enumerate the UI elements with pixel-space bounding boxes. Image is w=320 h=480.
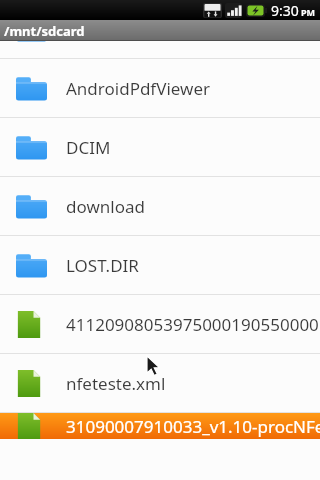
staticText: nfeteste.xml: [66, 372, 166, 395]
staticText: 41120908053975000190550000: [66, 313, 319, 336]
button[interactable]: Android: [0, 41, 320, 59]
staticText: DCIM: [66, 136, 111, 159]
staticText: PM: [301, 6, 316, 18]
staticText: download: [66, 195, 145, 218]
button[interactable]: AndroidPdfViewer: [0, 59, 320, 118]
staticText: 9:30: [271, 1, 299, 20]
staticText: 31090007910033_v1.10-procNFe.xml: [66, 415, 320, 438]
staticText: LOST.DIR: [66, 254, 139, 277]
button[interactable]: LOST.DIR: [0, 236, 320, 295]
other: Pointer: [0, 0, 320, 480]
button[interactable]: nfeteste.xml: [0, 354, 320, 413]
button[interactable]: DCIM: [0, 118, 320, 177]
button[interactable]: download: [0, 177, 320, 236]
staticText: /mnt/sdcard: [4, 22, 85, 40]
button[interactable]: 31090007910033_v1.10-procNFe.xml: [0, 413, 320, 439]
button[interactable]: 41120908053975000190550000: [0, 295, 320, 354]
staticText: AndroidPdfViewer: [66, 77, 211, 100]
